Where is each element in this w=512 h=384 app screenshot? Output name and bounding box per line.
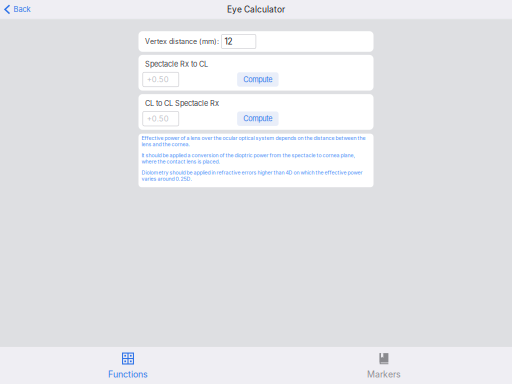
staticText: Compute: [243, 114, 272, 123]
button[interactable]: Functions: [0, 347, 256, 384]
staticText: Functions: [108, 369, 148, 380]
staticText: Diolometry should be applied in refracti…: [141, 169, 362, 182]
staticText: It should be applied a conversion of the…: [141, 152, 355, 165]
staticText: Markers: [367, 369, 401, 380]
staticText: Eye Calculator: [227, 4, 285, 14]
staticText: Effective power of a lens over the ocula…: [141, 135, 365, 147]
button[interactable]: Compute: [237, 111, 279, 126]
staticText: +0.50: [147, 75, 169, 84]
staticText: Spectacle Rx to CL: [145, 60, 208, 69]
staticText: CL to CL Spectacle Rx: [145, 99, 219, 108]
button[interactable]: Back: [0, 0, 36, 19]
staticText: Compute: [243, 75, 272, 84]
staticText: 12: [224, 36, 232, 46]
staticText: Vertex distance (mm):: [145, 37, 219, 46]
button[interactable]: Markers: [256, 347, 512, 384]
staticText: +0.50: [147, 114, 169, 123]
staticText: Back: [13, 5, 30, 14]
button[interactable]: Compute: [237, 72, 279, 87]
